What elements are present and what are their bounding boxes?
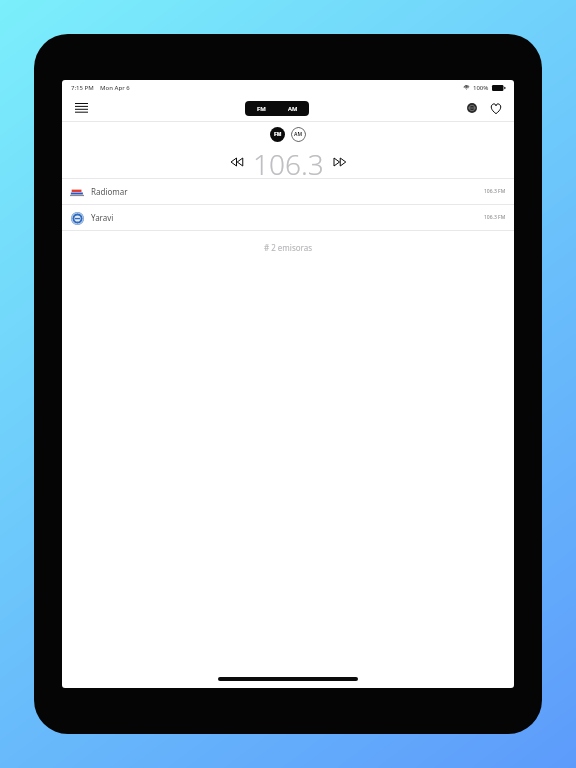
button[interactable]: AM (277, 101, 309, 116)
button[interactable]: Previous station (227, 152, 247, 172)
button[interactable]: Yaravi (62, 205, 514, 230)
staticText: Mon Apr 6 (100, 84, 130, 92)
staticText: 100% (473, 84, 489, 92)
staticText: 106.3 FM (484, 214, 506, 221)
staticText: 7:15 PM (71, 84, 94, 92)
button[interactable]: Radiomar (62, 179, 514, 204)
staticText: Yaravi (91, 212, 114, 223)
staticText: 106.3 (253, 145, 324, 178)
staticText: # 2 emisoras (62, 242, 514, 253)
button[interactable]: Globe (462, 98, 482, 118)
button[interactable]: Next station (330, 152, 350, 172)
staticText: FM (257, 105, 266, 113)
button[interactable]: FM (245, 101, 277, 116)
staticText: AM (294, 131, 303, 138)
staticText: AM (288, 105, 298, 113)
button[interactable]: AM (291, 127, 306, 142)
button[interactable]: Favorites (486, 98, 506, 118)
button[interactable]: Menu (70, 97, 92, 119)
staticText: FM (274, 131, 282, 138)
staticText: 106.3 FM (484, 188, 506, 195)
button[interactable]: FM (270, 127, 285, 142)
staticText: Radiomar (91, 186, 128, 197)
